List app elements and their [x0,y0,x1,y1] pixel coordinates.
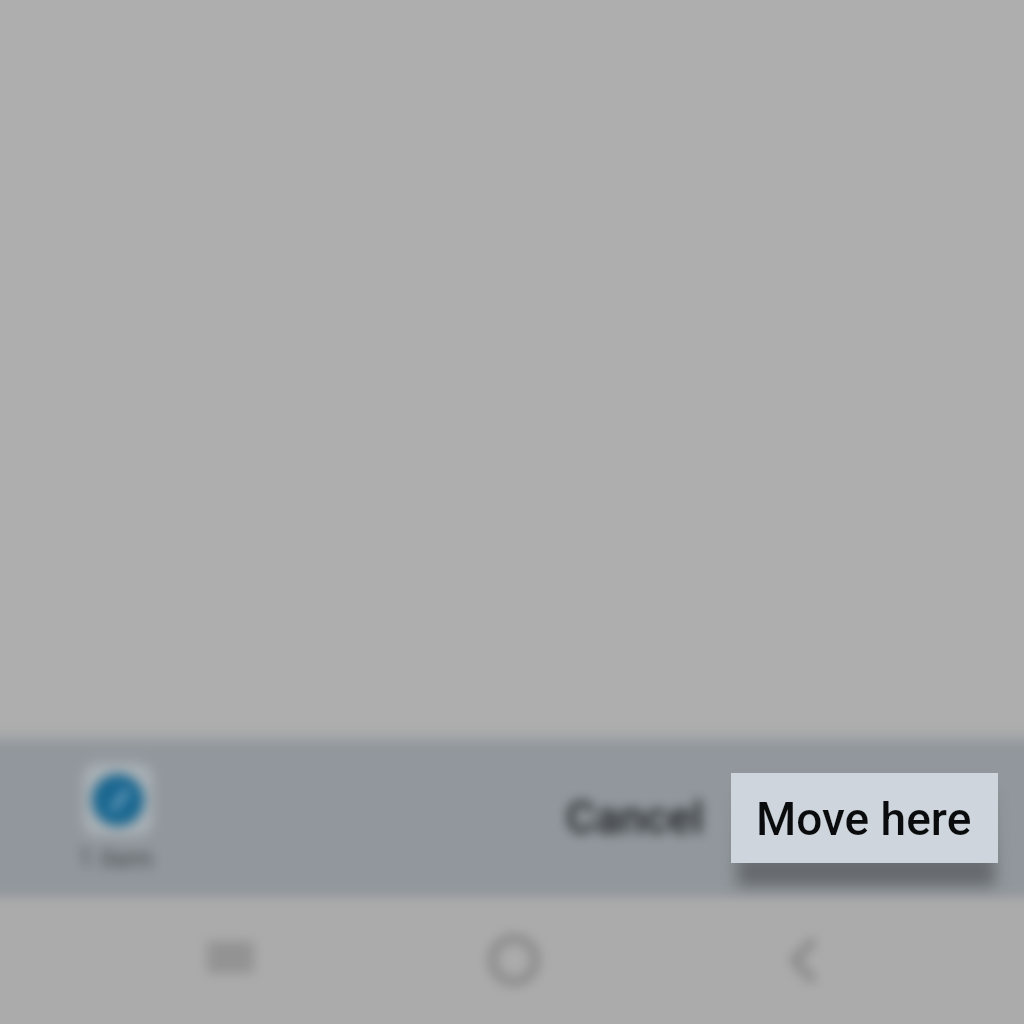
staticText: Move here [756,792,972,846]
button[interactable]: Home [472,918,556,1002]
staticText: Cancel [566,791,704,844]
button[interactable]: Back [759,918,843,1002]
staticText: 1 item [78,843,154,875]
button[interactable]: Move here [731,773,998,863]
button[interactable]: Recent apps [188,918,272,1002]
button[interactable]: Cancel [540,742,730,893]
